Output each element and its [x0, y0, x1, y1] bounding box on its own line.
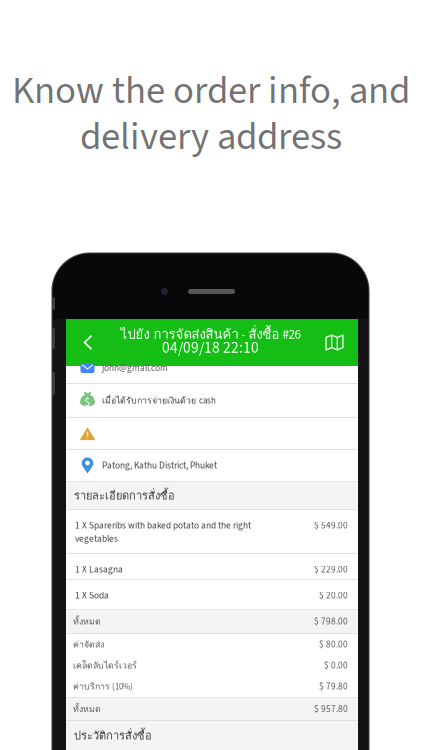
staticText: delivery address: [80, 109, 342, 165]
staticText: ประวัติการสั่งซื้อ: [74, 727, 152, 744]
staticText: $ 0.00: [324, 659, 348, 672]
button[interactable]: john@gmail.com: [66, 366, 358, 383]
staticText: $ 798.00: [314, 615, 348, 628]
staticText: john@gmail.com: [102, 361, 168, 375]
button[interactable]: Map: [310, 319, 358, 366]
staticText: 1 X Lasagna: [75, 563, 123, 576]
staticText: ค่าจัดส่ง: [73, 637, 104, 651]
staticText: $ 80.00: [319, 638, 348, 651]
button[interactable]: [66, 418, 358, 449]
staticText: ทั้งหมด: [73, 702, 101, 716]
staticText: $ 229.00: [314, 563, 348, 576]
staticText: $ 20.00: [319, 589, 348, 602]
staticText: $: [84, 394, 90, 410]
staticText: เคล็ดลับไดร์เวอร์: [73, 658, 137, 672]
staticText: 1 X Soda: [75, 589, 109, 602]
staticText: ค่าบริการ (10%): [73, 679, 133, 693]
staticText: $ 79.80: [319, 680, 348, 693]
button[interactable]: Back: [65, 319, 110, 366]
staticText: $ 957.80: [314, 702, 348, 716]
button[interactable]: Patong, Kathu District, Phuket: [66, 450, 358, 481]
staticText: ไปยัง การจัดส่งสินค้า - สั่งซื้อ #26: [120, 324, 300, 344]
staticText: 1 X Spareribs with baked potato and the …: [75, 519, 251, 546]
staticText: 04/09/18 22:10: [162, 337, 259, 359]
staticText: Know the order info, and: [12, 63, 410, 119]
staticText: $ 549.00: [314, 519, 348, 532]
staticText: รายละเอียดการสั่งซื้อ: [74, 487, 175, 504]
button[interactable]: $: [66, 384, 358, 417]
staticText: Patong, Kathu District, Phuket: [102, 459, 217, 472]
staticText: ทั้งหมด: [73, 614, 101, 628]
staticText: เมื่อได้รับการจ่ายเงินด้วย cash: [102, 393, 216, 407]
